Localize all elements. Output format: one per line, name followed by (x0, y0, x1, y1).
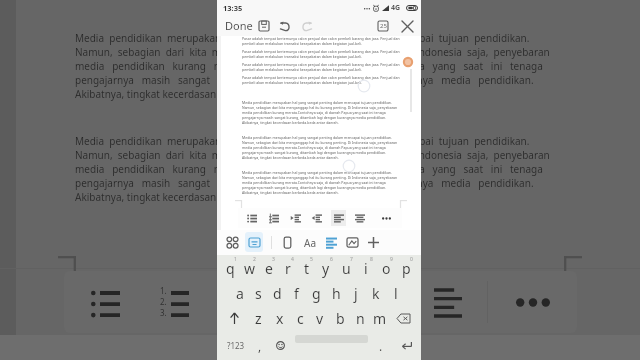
staticText: 25 (380, 22, 387, 30)
button[interactable]: a (230, 281, 249, 306)
staticText: Aa (304, 236, 316, 250)
button[interactable]: x (269, 306, 290, 331)
button[interactable]: Font (301, 230, 319, 255)
button[interactable]: Enter (397, 331, 415, 360)
button[interactable]: Save (255, 17, 273, 35)
staticText: Akibatnya, tingkat kecerdasan berbeda-be… (242, 190, 404, 195)
button[interactable]: l (386, 281, 406, 306)
button[interactable]: 7 (336, 256, 356, 281)
button[interactable]: Page setup (278, 230, 296, 255)
staticText: 1 (234, 256, 237, 263)
staticText: u (342, 259, 351, 278)
staticText: Pasar adalah tempat bertemunya calon pen… (242, 36, 404, 41)
staticText: pembeli akan melakukan transaksi kesepak… (242, 67, 404, 72)
button[interactable]: Close (398, 17, 416, 35)
staticText: pengajarnya masih sangat kurang, ditamba… (242, 150, 404, 155)
staticText: Akibatnya, tingkat kecerdasan berbeda-be… (75, 190, 352, 204)
button[interactable]: , (251, 331, 269, 360)
staticText: m (373, 309, 387, 328)
staticText: 8 (370, 256, 373, 263)
staticText: j (354, 284, 358, 303)
button[interactable]: 3 (259, 256, 278, 281)
staticText: . (379, 338, 383, 354)
button[interactable]: Space (295, 334, 368, 344)
button[interactable]: Shift (221, 306, 248, 331)
staticText: l (394, 284, 398, 303)
button[interactable]: m (370, 306, 390, 331)
staticText: Namun, sebagian dari kita menganggap hal… (242, 140, 404, 145)
staticText: o (382, 259, 391, 278)
staticText: g (312, 284, 321, 303)
button[interactable]: 6 (316, 256, 336, 281)
button[interactable]: Increase indent (288, 210, 303, 226)
button[interactable]: Undo (275, 17, 293, 35)
staticText: pembeli akan melakukan transaksi kesepak… (242, 41, 404, 46)
staticText: Media pendidikan merupakan hal yang sang… (75, 134, 530, 148)
staticText: h (332, 284, 341, 303)
staticText: p (402, 259, 411, 278)
button[interactable]: n (350, 306, 370, 331)
button[interactable]: Numbered list (266, 210, 281, 226)
staticText: Namun, sebagian dari kita menganggap hal… (242, 105, 404, 110)
button[interactable]: 0 (396, 256, 416, 281)
button[interactable]: Bulleted list (244, 210, 259, 226)
staticText: Pasar adalah tempat bertemunya calon pen… (242, 75, 404, 80)
button[interactable]: d (268, 281, 287, 306)
button[interactable]: Apps (223, 230, 241, 255)
button[interactable]: Redo (298, 17, 316, 35)
button[interactable]: b (330, 306, 350, 331)
staticText: pengajarnya masih sangat kurang, ditamba… (75, 73, 534, 87)
button[interactable]: 1 (221, 256, 240, 281)
button[interactable]: ?123 (219, 331, 253, 360)
button[interactable]: g (306, 281, 326, 306)
staticText: r (285, 259, 291, 278)
staticText: ?123 (227, 340, 245, 351)
staticText: media pendidikan kurang merata.Contohnya… (75, 59, 543, 73)
staticText: media pendidikan kurang merata.Contohnya… (75, 162, 543, 176)
staticText: 3 (272, 256, 275, 263)
staticText: w (244, 259, 256, 278)
staticText: 9 (390, 256, 393, 263)
staticText: pengajarnya masih sangat kurang, ditamba… (242, 115, 404, 120)
staticText: pembeli akan melakukan transaksi kesepak… (242, 54, 404, 59)
button[interactable]: Align left (331, 210, 346, 226)
staticText: c (297, 309, 304, 328)
button[interactable]: Backspace (390, 306, 416, 331)
button[interactable]: Paragraph (322, 230, 340, 255)
button[interactable]: 5 (297, 256, 316, 281)
button[interactable]: f (287, 281, 306, 306)
button[interactable]: More (378, 208, 394, 228)
button[interactable]: Decrease indent (309, 210, 324, 226)
button[interactable]: Keyboard (245, 232, 263, 252)
button[interactable]: 4 (278, 256, 297, 281)
button[interactable]: 2 (240, 256, 259, 281)
button[interactable]: k (366, 281, 386, 306)
button[interactable]: 9 (376, 256, 396, 281)
button[interactable]: Insert image (343, 230, 361, 255)
button[interactable]: Word count (374, 17, 392, 35)
button[interactable]: h (326, 281, 346, 306)
staticText: k (372, 284, 380, 303)
staticText: Akibatnya, tingkat kecerdasan berbeda-be… (242, 155, 404, 160)
button[interactable]: . (372, 331, 390, 360)
button[interactable]: Done (223, 16, 255, 35)
staticText: a (236, 284, 244, 303)
button[interactable]: 8 (356, 256, 376, 281)
button[interactable]: Align center (352, 210, 367, 226)
button[interactable]: Emoji (271, 331, 289, 360)
staticText: v (316, 309, 324, 328)
button[interactable]: z (248, 306, 269, 331)
staticText: Media pendidikan merupakan hal yang sang… (242, 135, 404, 140)
staticText: pengajarnya masih sangat kurang, ditamba… (242, 185, 404, 190)
button[interactable]: Add (364, 230, 382, 255)
button[interactable]: s (249, 281, 268, 306)
button[interactable]: j (346, 281, 366, 306)
staticText: q (226, 259, 235, 278)
button[interactable]: v (310, 306, 330, 331)
staticText: Namun, sebagian dari kita menganggap hal… (242, 175, 404, 180)
staticText: b (336, 309, 345, 328)
staticText: Media pendidikan merupakan hal yang sang… (242, 170, 404, 175)
staticText: 1. (160, 285, 167, 296)
button[interactable]: c (290, 306, 310, 331)
staticText: n (356, 309, 365, 328)
